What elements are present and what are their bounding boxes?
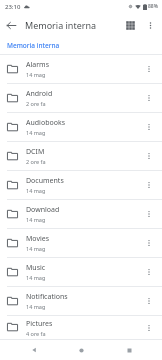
button[interactable]: More options for Documents [140,176,158,194]
button[interactable]: More options for Notifications [140,292,158,310]
button[interactable]: Back [0,14,22,36]
staticText: 2 ore fa [26,100,46,107]
button[interactable]: More options for Download [140,205,158,223]
button[interactable]: Music [0,258,162,286]
staticText: Alarms [26,60,49,70]
staticText: Android [26,89,53,99]
button[interactable]: More options for Movies [140,234,158,252]
staticText: Documents [26,176,64,186]
staticText: Memoria interna [7,41,60,50]
staticText: 14 mag [26,245,46,252]
button[interactable]: Audiobooks [0,113,162,141]
button[interactable]: Notifications [0,287,162,315]
staticText: 23:10 [5,3,21,11]
staticText: Notifications [26,292,68,302]
staticText: DCIM [26,147,45,157]
staticText: Download [26,205,60,215]
button[interactable]: More options for Music [140,263,158,281]
staticText: 14 mag [26,187,46,194]
staticText: Movies [26,234,50,244]
button[interactable]: Pictures [0,316,162,339]
button[interactable]: Grid view [120,15,140,35]
button[interactable]: Alarms [0,55,162,83]
staticText: 4 ore fa [26,330,46,337]
staticText: 14 mag [26,274,46,281]
button[interactable]: Android [0,84,162,112]
staticText: 14 mag [26,129,46,136]
button[interactable]: Memoria interna [0,37,162,54]
staticText: 14 mag [26,216,46,223]
button[interactable]: DCIM [0,142,162,170]
staticText: 14 mag [26,71,46,78]
button[interactable]: Back [20,340,48,360]
button[interactable]: More options for Alarms [140,60,158,78]
button[interactable]: Recent apps [115,340,143,360]
button[interactable]: More options for DCIM [140,147,158,165]
button[interactable]: Download [0,200,162,228]
button[interactable]: More options for Pictures [140,319,158,337]
button[interactable]: More options for Android [140,89,158,107]
staticText: 2 ore fa [26,158,46,165]
staticText: Memoria interna [25,19,97,31]
staticText: Pictures [26,319,53,329]
button[interactable]: More options for Audiobooks [140,118,158,136]
button[interactable]: Home [67,340,95,360]
staticText: Audiobooks [26,118,66,128]
button[interactable]: Movies [0,229,162,257]
button[interactable]: Documents [0,171,162,199]
staticText: 88% [148,3,158,10]
button[interactable]: More options [140,15,160,35]
staticText: 14 mag [26,303,46,310]
staticText: Music [26,263,46,273]
